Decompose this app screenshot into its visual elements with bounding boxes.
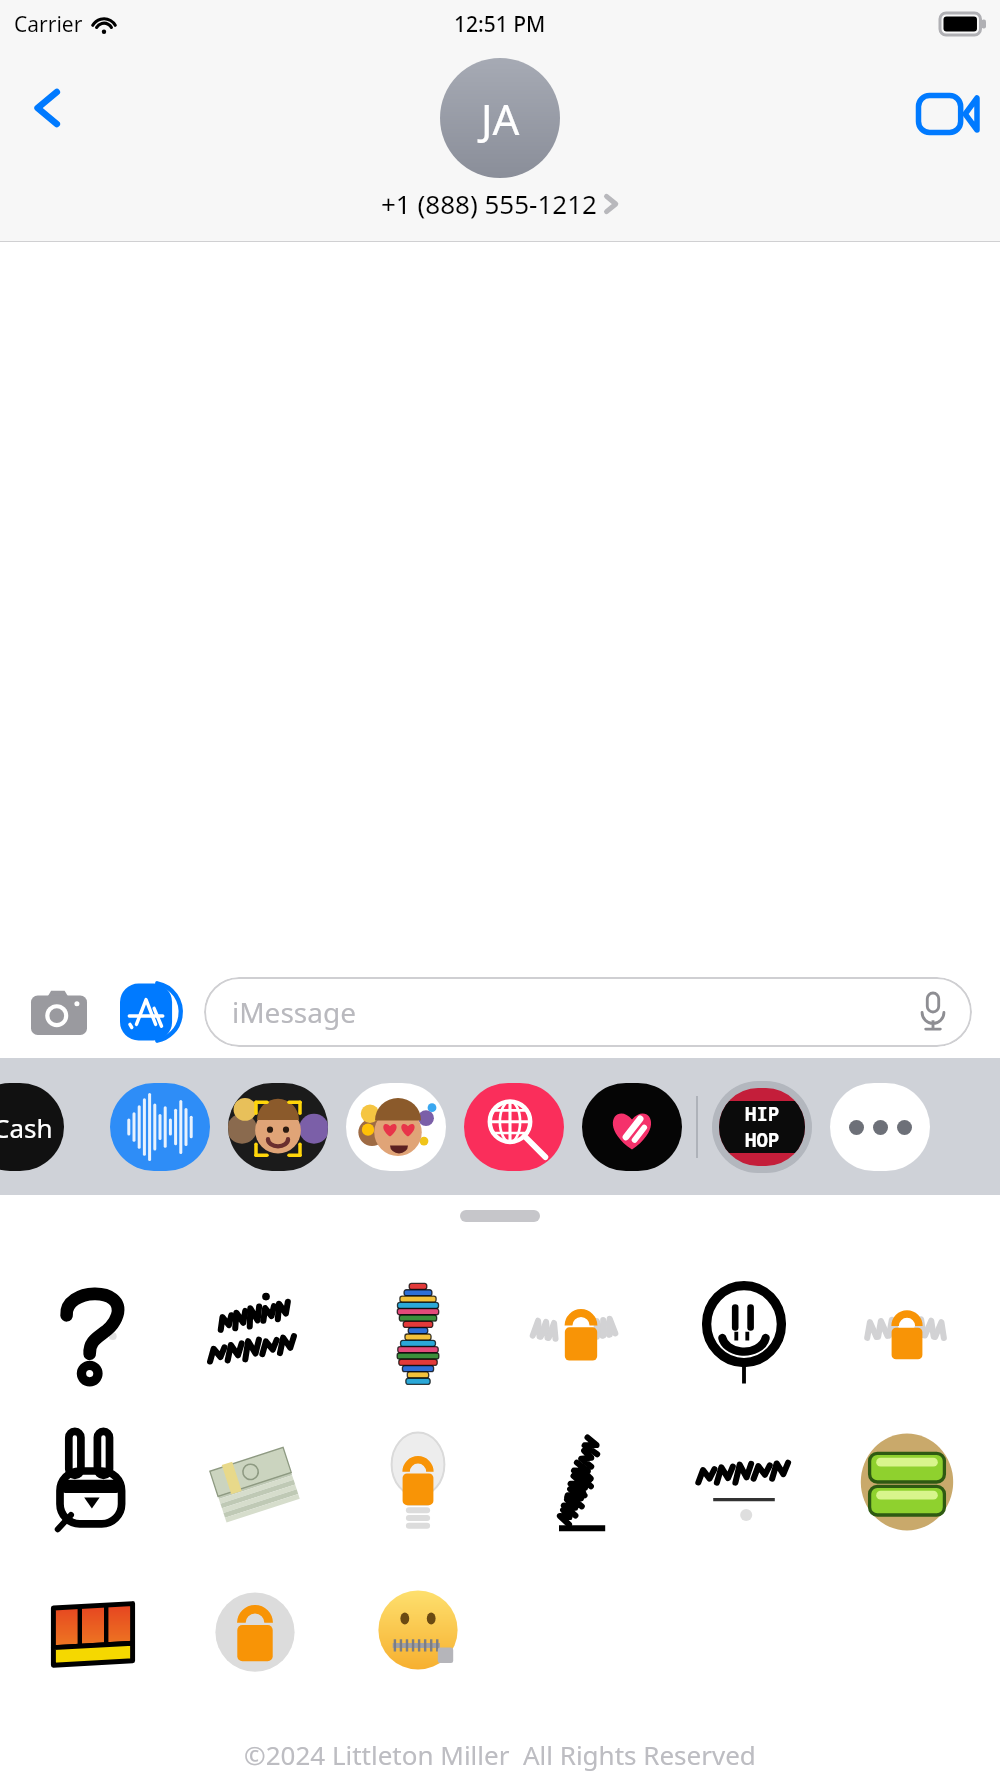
button[interactable]: Sticker 14 — [174, 1560, 336, 1700]
button[interactable]: Images search — [464, 1083, 564, 1171]
button[interactable]: Sticker 12 — [825, 1412, 988, 1552]
button[interactable]: Sticker 11 — [662, 1412, 825, 1552]
button[interactable]: Sticker 4 — [499, 1264, 662, 1404]
staticText: Cash — [0, 1110, 53, 1145]
button[interactable]: Sticker 10 — [499, 1412, 662, 1552]
button[interactable]: Sticker 15 — [336, 1560, 499, 1700]
button[interactable]: iMessage — [204, 977, 972, 1047]
staticText: 12:51 PM — [454, 10, 546, 39]
button[interactable]: Sticker 5 — [662, 1264, 825, 1404]
staticText: HIP — [745, 1101, 780, 1127]
staticText: ©2024 Littleton Miller All Rights Reserv… — [244, 1737, 756, 1772]
button[interactable]: Memoji camera — [228, 1083, 328, 1171]
button[interactable]: Sticker 8 — [174, 1412, 336, 1552]
button[interactable]: Sticker 1 — [12, 1264, 174, 1404]
button[interactable]: JA — [381, 58, 619, 221]
staticText: JA — [481, 90, 520, 147]
button[interactable]: Digital Touch — [582, 1083, 682, 1171]
button[interactable]: Sticker 7 — [12, 1412, 174, 1552]
button[interactable]: App Store — [116, 977, 186, 1047]
button[interactable]: Sticker 9 — [336, 1412, 499, 1552]
button[interactable]: Audio messages — [110, 1083, 210, 1171]
button[interactable]: Apple Cash — [0, 1083, 64, 1171]
staticText: iMessage — [232, 993, 356, 1031]
button[interactable]: Drag handle — [460, 1210, 540, 1222]
button[interactable]: Back — [14, 74, 82, 142]
button[interactable]: Sticker 2 — [174, 1264, 336, 1404]
staticText: +1 (888) 555-1212 — [381, 186, 597, 221]
button[interactable]: FaceTime video call — [910, 76, 986, 152]
staticText: Carrier — [14, 10, 83, 39]
button[interactable]: Sticker 6 — [825, 1264, 988, 1404]
staticText: HOP — [745, 1127, 780, 1153]
button[interactable]: Hip Hop stickers — [712, 1081, 812, 1173]
button[interactable]: Memoji stickers — [346, 1083, 446, 1171]
button[interactable]: Sticker 3 — [336, 1264, 499, 1404]
button[interactable]: More apps — [830, 1083, 930, 1171]
button[interactable]: Sticker 13 — [12, 1560, 174, 1700]
button[interactable]: Camera — [24, 977, 94, 1047]
